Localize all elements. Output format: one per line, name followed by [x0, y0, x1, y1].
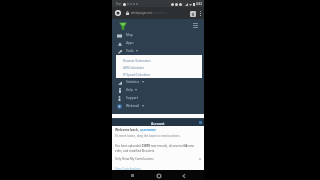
button[interactable]: Webmail: [112, 102, 204, 110]
staticText: Map: [126, 33, 133, 37]
button[interactable]: Menu: [191, 21, 199, 29]
button[interactable]: Only Show My Contributions: [115, 157, 201, 161]
staticText: Webmail: [126, 104, 140, 108]
button[interactable]: IP Speed Calculator: [123, 73, 151, 77]
staticText: Welcome back,: [115, 128, 140, 132]
staticText: Statistics: [126, 80, 140, 84]
staticText: You have uploaded 21878 new records, dis…: [115, 144, 201, 152]
button[interactable]: Account: [112, 119, 204, 126]
button[interactable]: Browser home: [114, 9, 122, 17]
button[interactable]: More options: [198, 9, 202, 18]
button[interactable]: Back: [179, 171, 188, 180]
button[interactable]: Apps: [112, 39, 204, 47]
button[interactable]: Home: [118, 20, 128, 30]
staticText: Support: [126, 96, 139, 100]
staticText: Apps: [126, 41, 134, 45]
button[interactable]: ASN Calculator: [123, 66, 144, 70]
button[interactable]: Reader mode: [189, 10, 196, 17]
button[interactable]: username: [140, 128, 156, 132]
button[interactable]: View Contributions: [115, 167, 141, 170]
staticText: Tue: [116, 2, 122, 6]
staticText: To move boxes, drag the boxes to new loc…: [115, 134, 181, 138]
staticText: Tools: [126, 49, 134, 53]
button[interactable]: Home: [154, 171, 163, 180]
staticText: 4:32: [196, 2, 202, 6]
staticText: /search/res: [152, 11, 168, 15]
button[interactable]: Support: [112, 94, 204, 102]
button[interactable]: Map: [112, 31, 204, 39]
staticText: whitepages.net: [131, 11, 152, 15]
button[interactable]: Statistics: [112, 78, 204, 86]
staticText: B: [192, 12, 195, 17]
button[interactable]: Tools: [112, 47, 204, 55]
button[interactable]: Recent apps: [128, 171, 137, 180]
staticText: Only Show My Contributions: [115, 157, 154, 161]
staticText: Help: [126, 88, 133, 92]
button[interactable]: Browser Extensions: [123, 59, 151, 63]
staticText: Account: [151, 121, 165, 125]
button[interactable]: Help: [112, 86, 204, 94]
